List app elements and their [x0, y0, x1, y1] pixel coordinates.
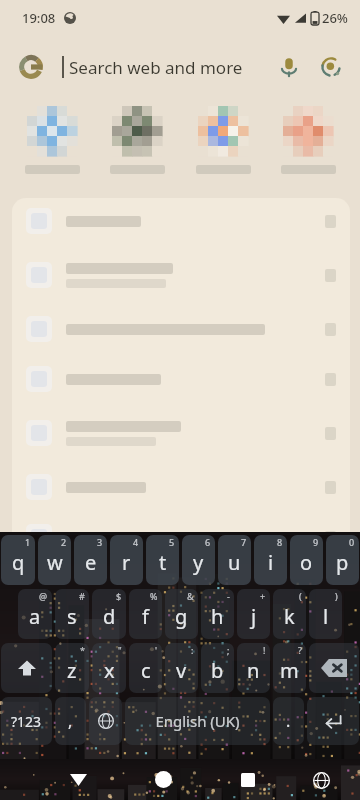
- staticText: #: [79, 590, 85, 602]
- staticText: 5: [169, 536, 175, 548]
- button[interactable]: App: [270, 98, 346, 196]
- button[interactable]: 9: [290, 535, 323, 585]
- button[interactable]: ;: [201, 643, 234, 693]
- button[interactable]: App: [185, 98, 261, 196]
- staticText: 3: [97, 536, 103, 548]
- staticText: ": [118, 644, 122, 656]
- button[interactable]: :: [165, 643, 198, 693]
- button[interactable]: (: [273, 589, 306, 639]
- button[interactable]: Voice search: [278, 56, 300, 78]
- button[interactable]: #: [55, 589, 89, 639]
- button[interactable]: 0: [326, 535, 359, 585]
- staticText: x: [104, 657, 115, 684]
- button[interactable]: Shift: [1, 643, 52, 693]
- button[interactable]: Switch input method: [301, 760, 341, 800]
- button[interactable]: -: [201, 589, 234, 639]
- button[interactable]: 2: [38, 535, 71, 585]
- staticText: +: [260, 590, 266, 602]
- button[interactable]: English (UK): [125, 697, 270, 745]
- staticText: r: [122, 549, 131, 576]
- button[interactable]: $: [92, 589, 126, 639]
- button[interactable]: 1: [1, 535, 35, 585]
- staticText: ;: [227, 644, 230, 656]
- other: Google: [18, 54, 44, 80]
- button[interactable]: Home: [141, 759, 185, 800]
- button[interactable]: .: [273, 697, 304, 745]
- staticText: k: [284, 603, 295, 630]
- button[interactable]: @: [18, 589, 52, 639]
- button[interactable]: Recent apps: [226, 759, 270, 800]
- staticText: English (UK): [155, 711, 240, 731]
- other: App: [112, 106, 162, 156]
- staticText: l: [323, 603, 329, 630]
- staticText: ?: [298, 644, 302, 656]
- button[interactable]: *: [55, 643, 89, 693]
- button[interactable]: [12, 404, 350, 462]
- button[interactable]: +: [237, 589, 270, 639]
- other: App: [283, 106, 333, 156]
- button[interactable]: ': [129, 643, 162, 693]
- staticText: u: [228, 549, 241, 576]
- button[interactable]: ?: [273, 643, 306, 693]
- staticText: y: [193, 549, 204, 576]
- button[interactable]: 6: [182, 535, 215, 585]
- staticText: j: [251, 603, 257, 630]
- button[interactable]: Hide keyboard: [56, 759, 100, 800]
- staticText: v: [176, 657, 187, 684]
- button[interactable]: ?123: [1, 697, 52, 745]
- staticText: h: [211, 603, 224, 630]
- staticText: &: [187, 590, 194, 602]
- staticText: a: [29, 603, 41, 630]
- button[interactable]: 7: [218, 535, 251, 585]
- staticText: 7: [241, 536, 247, 548]
- button[interactable]: [12, 196, 350, 246]
- staticText: q: [12, 549, 25, 576]
- button[interactable]: Enter: [307, 697, 359, 745]
- staticText: m: [280, 657, 299, 684]
- staticText: b: [211, 657, 224, 684]
- other: App: [198, 106, 248, 156]
- button[interactable]: ": [92, 643, 126, 693]
- staticText: ?123: [11, 712, 42, 731]
- button[interactable]: ): [309, 589, 342, 639]
- button[interactable]: [12, 354, 350, 404]
- staticText: 2: [61, 536, 67, 548]
- staticText: (: [299, 590, 302, 602]
- button[interactable]: &: [165, 589, 198, 639]
- button[interactable]: Google: [0, 36, 360, 98]
- staticText: :: [191, 644, 194, 656]
- staticText: 26%: [322, 9, 348, 27]
- staticText: d: [103, 603, 116, 630]
- staticText: e: [85, 549, 97, 576]
- button[interactable]: App: [99, 98, 175, 196]
- staticText: 8: [277, 536, 283, 548]
- button[interactable]: 3: [74, 535, 107, 585]
- staticText: 9: [313, 536, 319, 548]
- button[interactable]: ,: [55, 697, 86, 745]
- staticText: s: [67, 603, 77, 630]
- staticText: *: [80, 644, 85, 656]
- button[interactable]: Backspace: [309, 643, 359, 693]
- button[interactable]: !: [237, 643, 270, 693]
- staticText: 1: [25, 536, 31, 548]
- staticText: .: [286, 710, 291, 732]
- button[interactable]: 5: [146, 535, 179, 585]
- button[interactable]: Google Lens: [320, 56, 342, 78]
- button[interactable]: [12, 462, 350, 512]
- button[interactable]: [12, 512, 350, 562]
- staticText: ,: [68, 710, 73, 732]
- staticText: -: [227, 590, 230, 602]
- button[interactable]: 8: [254, 535, 287, 585]
- button[interactable]: App: [14, 98, 90, 196]
- staticText: w: [47, 549, 63, 576]
- button[interactable]: [12, 304, 350, 354]
- staticText: f: [142, 603, 149, 630]
- staticText: $: [116, 590, 122, 602]
- button[interactable]: [12, 246, 350, 304]
- button[interactable]: 4: [110, 535, 143, 585]
- staticText: i: [268, 549, 274, 576]
- button[interactable]: %: [129, 589, 162, 639]
- staticText: 4: [133, 536, 139, 548]
- button[interactable]: Change keyboard language: [89, 697, 122, 745]
- staticText: g: [175, 603, 188, 630]
